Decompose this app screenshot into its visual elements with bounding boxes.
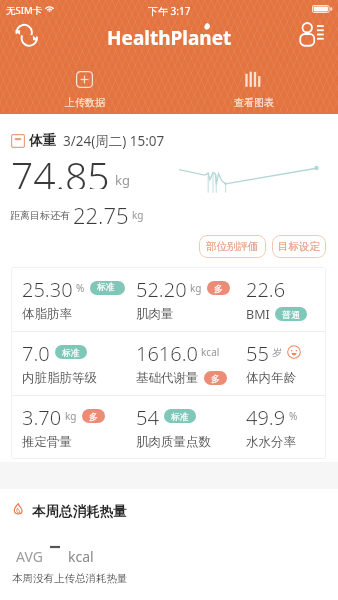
staticText: 标准 <box>62 347 80 358</box>
staticText: 22.75 <box>73 200 129 224</box>
staticText: 下午 3:17 <box>148 4 191 18</box>
staticText: kcal <box>68 547 94 566</box>
staticText: 无SIM卡 <box>6 4 43 17</box>
staticText: 上传数据 <box>65 96 105 109</box>
staticText: 7.0 <box>22 340 50 361</box>
staticText: 查看图表 <box>234 96 274 109</box>
staticText: HealthPlanet <box>107 25 232 51</box>
button[interactable]: 3.70 <box>11 396 125 459</box>
staticText: kg <box>115 171 130 189</box>
staticText: 岁 <box>272 346 282 359</box>
staticText: BMI <box>246 306 270 322</box>
button[interactable]: 49.9 <box>235 396 326 459</box>
staticText: 本周没有上传总消耗热量 <box>12 572 128 585</box>
staticText: 体内年龄 <box>246 370 296 386</box>
staticText: % <box>289 409 298 423</box>
staticText: 标准一 <box>97 281 118 295</box>
button[interactable]: 25.30 <box>11 267 125 331</box>
staticText: kg <box>65 409 77 423</box>
staticText: 3/24(周二) 15:07 <box>63 132 165 149</box>
staticText: kcal <box>201 345 220 359</box>
button[interactable]: 52.20 <box>125 267 235 331</box>
staticText: 水水分率 <box>246 434 296 450</box>
staticText: 本周总消耗热量 <box>32 503 127 519</box>
button[interactable]: 1616.0 <box>125 332 235 395</box>
staticText: 3.70 <box>22 404 62 425</box>
staticText: 55 <box>246 340 269 361</box>
staticText: 体脂肪率 <box>22 306 72 322</box>
staticText: 54 <box>136 404 159 425</box>
button[interactable]: Profile <box>299 21 324 46</box>
staticText: 肌肉质量点数 <box>136 434 211 450</box>
staticText: % <box>76 281 85 295</box>
staticText: 49.9 <box>246 404 286 425</box>
staticText: 25.30 <box>22 276 73 297</box>
staticText: kg <box>190 281 202 295</box>
staticText: 标准 <box>171 411 189 422</box>
staticText: 内脏脂肪等级 <box>22 370 97 386</box>
staticText: 距离目标还有 <box>10 209 70 222</box>
button[interactable]: 目标设定 <box>272 235 326 258</box>
staticText: 多 <box>89 411 98 422</box>
staticText: 推定骨量 <box>22 434 72 450</box>
button[interactable]: 7.0 <box>11 332 125 395</box>
staticText: 多 <box>211 373 220 384</box>
button[interactable]: 上传数据 <box>0 71 169 111</box>
staticText: 多 <box>214 283 223 294</box>
staticText: 体重 <box>29 132 56 149</box>
button[interactable]: 22.6 <box>235 267 326 331</box>
button[interactable]: Refresh <box>15 24 38 47</box>
staticText: kg <box>132 208 144 222</box>
staticText: 74.85 <box>11 149 110 189</box>
button[interactable]: 部位别評価 <box>199 235 266 258</box>
staticText: AVG <box>16 547 43 566</box>
button[interactable]: 55 <box>235 332 326 395</box>
staticText: 22.6 <box>246 276 286 297</box>
staticText: 52.20 <box>136 276 187 297</box>
staticText: 目标设定 <box>278 240 320 253</box>
staticText: 1616.0 <box>136 340 198 361</box>
staticText: 基础代谢量 <box>136 370 199 386</box>
button[interactable]: 54 <box>125 396 235 459</box>
staticText: 普通 <box>282 309 300 320</box>
staticText: 部位别評価 <box>206 240 259 253</box>
button[interactable]: 查看图表 <box>169 71 338 111</box>
staticText: 肌肉量 <box>136 306 174 322</box>
